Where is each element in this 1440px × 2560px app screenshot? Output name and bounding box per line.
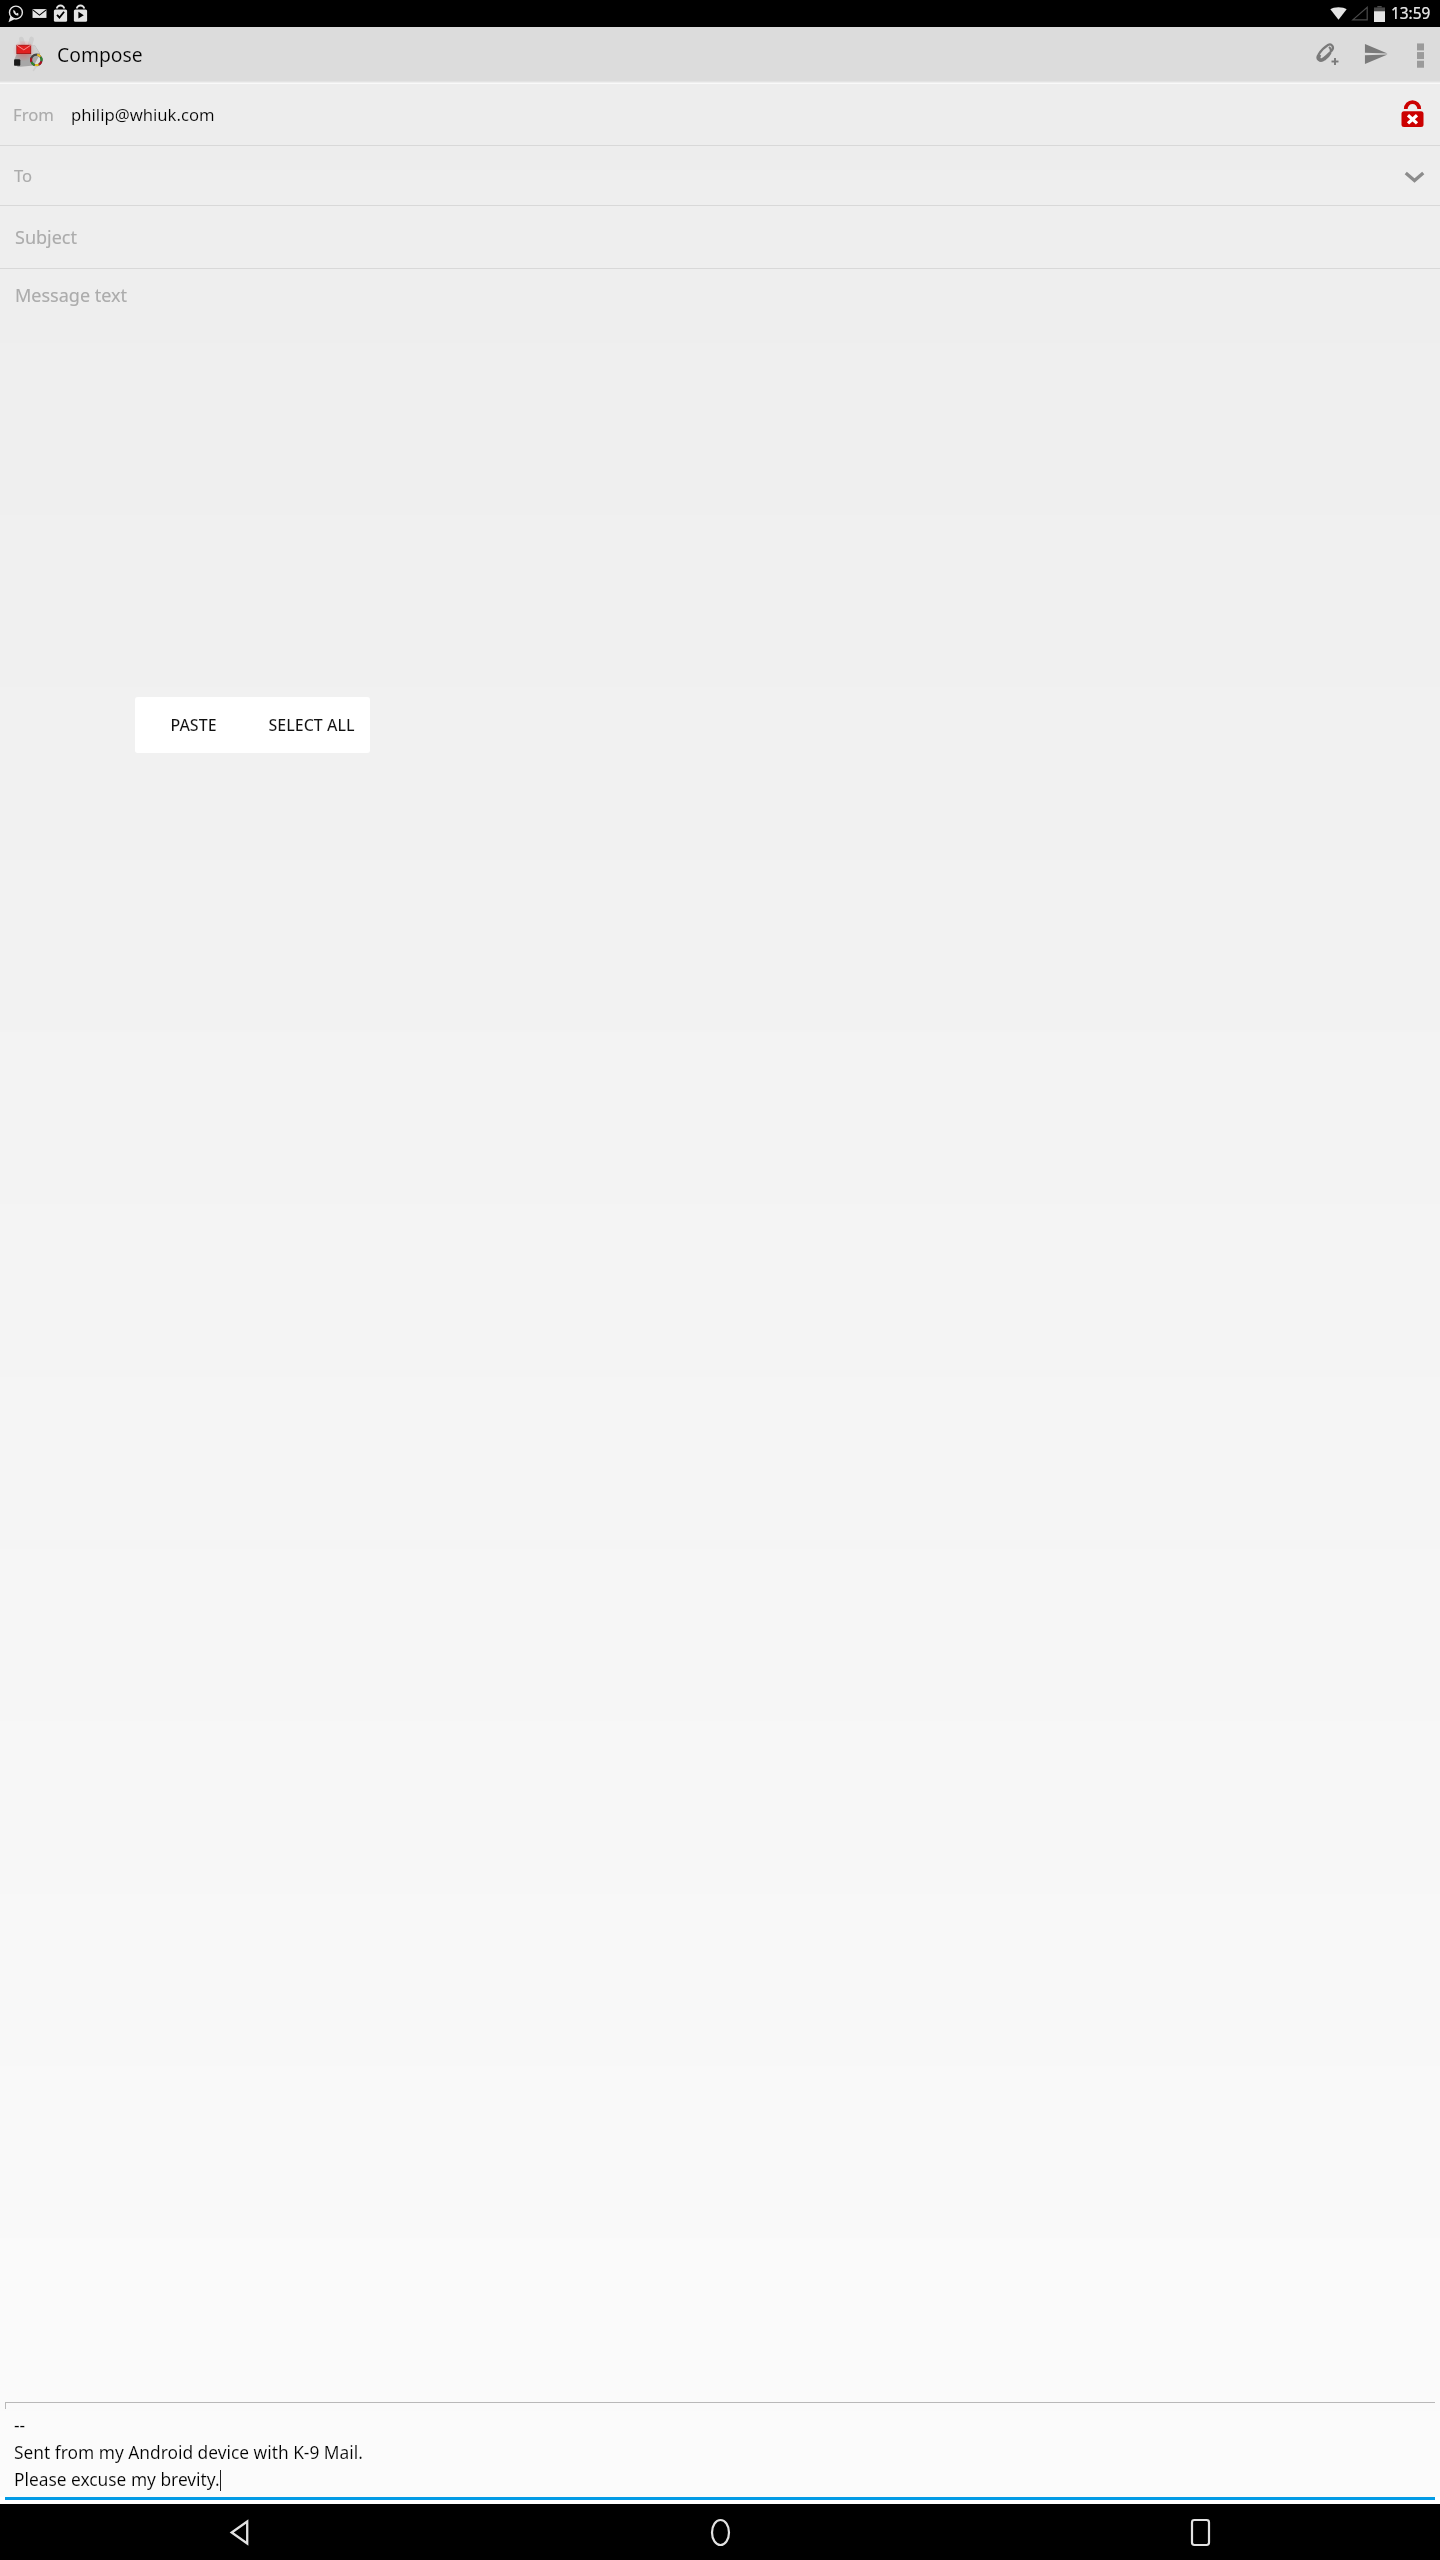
button[interactable]: Show Cc and Bcc xyxy=(1398,160,1430,192)
staticText: 13:59 xyxy=(1391,3,1431,24)
staticText: Subject xyxy=(15,225,78,250)
staticText: SELECT ALL xyxy=(268,714,355,736)
button[interactable]: To xyxy=(0,146,1440,205)
staticText: Sent from my Android device with K-9 Mai… xyxy=(14,2440,363,2464)
button[interactable]: Back xyxy=(0,2504,480,2560)
button[interactable]: -- xyxy=(5,2402,1435,2497)
button[interactable]: SELECT ALL xyxy=(252,697,370,753)
button[interactable]: From xyxy=(0,84,1440,145)
button[interactable]: Subject xyxy=(0,206,1440,268)
button[interactable]: Send xyxy=(1351,27,1401,81)
staticText: philip@whiuk.com xyxy=(71,103,215,126)
button[interactable]: Message text xyxy=(0,269,1440,2402)
staticText: From xyxy=(13,103,54,126)
staticText: PASTE xyxy=(170,714,217,736)
staticText: Message text xyxy=(15,283,128,308)
button[interactable]: More options xyxy=(1401,27,1440,81)
staticText: Compose xyxy=(57,41,143,67)
button[interactable]: PASTE xyxy=(135,697,252,753)
staticText: Please excuse my brevity. xyxy=(14,2467,220,2491)
button[interactable]: Recent apps xyxy=(960,2504,1440,2560)
button[interactable]: Home xyxy=(480,2504,960,2560)
staticText: To xyxy=(14,164,33,187)
staticText: -- xyxy=(14,2413,26,2437)
button[interactable]: Add attachment xyxy=(1301,27,1351,81)
button[interactable]: Encryption off xyxy=(1394,96,1431,133)
